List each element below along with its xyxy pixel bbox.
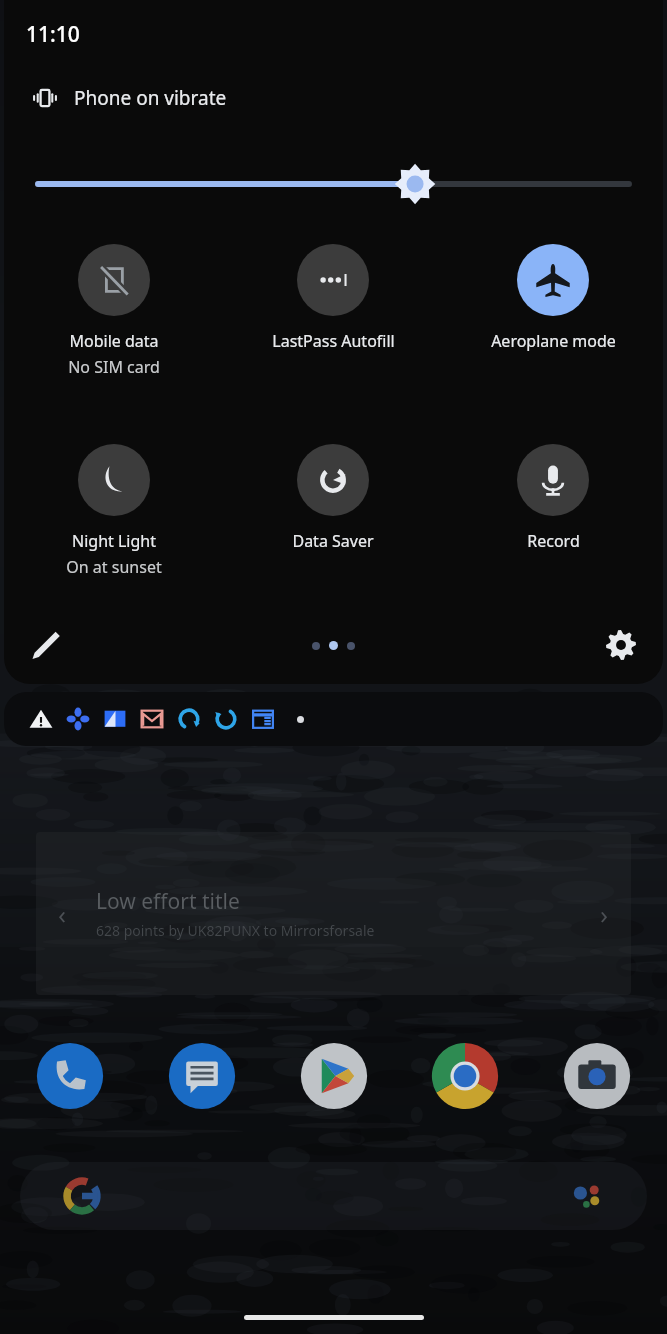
staticText: On at sunset [66, 556, 162, 578]
button[interactable]: Phone [34, 1040, 106, 1112]
staticText: No SIM card [68, 356, 160, 378]
button[interactable]: Edit tiles [18, 617, 74, 673]
staticText: LastPass Autofill [272, 330, 395, 352]
button[interactable]: Night Light [4, 444, 223, 578]
staticText: ‹ [58, 896, 67, 931]
staticText: Low effort title [96, 887, 240, 916]
button[interactable]: Chrome [429, 1040, 501, 1112]
button[interactable]: Settings [593, 617, 649, 673]
button[interactable]: Data Saver [223, 444, 443, 552]
staticText: Mobile data [69, 330, 159, 352]
staticText: Phone on vibrate [74, 85, 227, 111]
other: Google Search [65, 1179, 99, 1213]
staticText: Aeroplane mode [491, 330, 616, 352]
staticText: Night Light [72, 530, 156, 552]
other: Google Assistant [572, 1181, 602, 1211]
button[interactable]: Messages [166, 1040, 238, 1112]
staticText: 628 points by UK82PUNX to Mirrorsforsale [96, 921, 375, 940]
button[interactable]: Aeroplane mode [443, 244, 663, 352]
staticText: 11:10 [26, 20, 80, 49]
button[interactable]: Camera [561, 1040, 633, 1112]
staticText: Record [527, 530, 580, 552]
button[interactable] [4, 692, 663, 746]
button[interactable]: Mobile data [4, 244, 223, 378]
button[interactable]: LastPass Autofill [223, 244, 443, 352]
staticText: Data Saver [292, 530, 374, 552]
button[interactable]: Play Store [298, 1040, 370, 1112]
button[interactable]: Record [443, 444, 663, 552]
staticText: › [600, 896, 609, 931]
button[interactable]: Google Search [20, 1162, 647, 1230]
button[interactable]: Brightness [38, 162, 629, 206]
button[interactable]: ‹ [36, 832, 631, 995]
